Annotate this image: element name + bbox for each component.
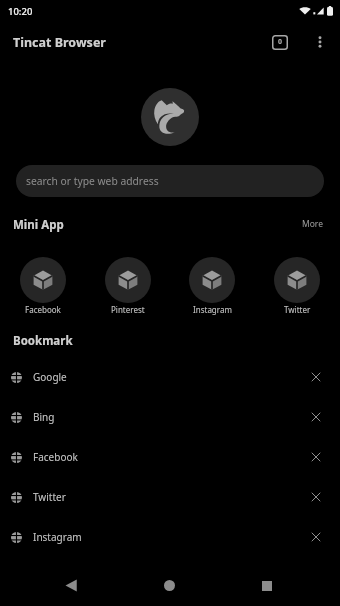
button[interactable]: Open tabs	[260, 22, 300, 62]
staticText: Twitter	[33, 490, 66, 504]
staticText: search or type web address	[26, 174, 159, 188]
button[interactable]: Search or type web address	[16, 165, 324, 197]
staticText: Facebook	[33, 450, 78, 464]
staticText: 0	[278, 37, 283, 47]
staticText: Instagram	[33, 530, 82, 544]
button[interactable]: Remove Instagram	[301, 522, 331, 552]
staticText: 10:20	[8, 5, 33, 18]
staticText: Mini App	[13, 217, 64, 233]
staticText: Twitter	[284, 304, 311, 315]
button[interactable]: Remove Facebook	[301, 442, 331, 472]
staticText: Tincat Browser	[13, 34, 106, 51]
button[interactable]: Remove Twitter	[301, 482, 331, 512]
button[interactable]: Tincat Browser logo	[141, 88, 199, 146]
staticText: Bookmark	[13, 333, 73, 349]
button[interactable]: Remove Bing	[301, 402, 331, 432]
button[interactable]: Pinterest	[94, 257, 162, 315]
button[interactable]: Home	[147, 560, 192, 605]
button[interactable]: More options	[300, 22, 340, 62]
button[interactable]: Back	[48, 560, 93, 605]
button[interactable]: Google	[0, 357, 340, 397]
staticText: Google	[33, 370, 67, 384]
staticText: Instagram	[193, 304, 232, 315]
button[interactable]: Remove Google	[301, 362, 331, 392]
staticText: More	[302, 218, 323, 230]
button[interactable]: Recent apps	[244, 560, 289, 605]
button[interactable]: Bing	[0, 397, 340, 437]
button[interactable]: Instagram	[178, 257, 246, 315]
button[interactable]: Twitter	[263, 257, 331, 315]
staticText: Bing	[33, 410, 55, 424]
button[interactable]: Facebook	[9, 257, 77, 315]
button[interactable]: More	[292, 213, 332, 235]
button[interactable]: Twitter	[0, 477, 340, 517]
staticText: Facebook	[25, 304, 61, 315]
button[interactable]: Facebook	[0, 437, 340, 477]
button[interactable]: Instagram	[0, 517, 340, 557]
staticText: Pinterest	[111, 304, 145, 315]
